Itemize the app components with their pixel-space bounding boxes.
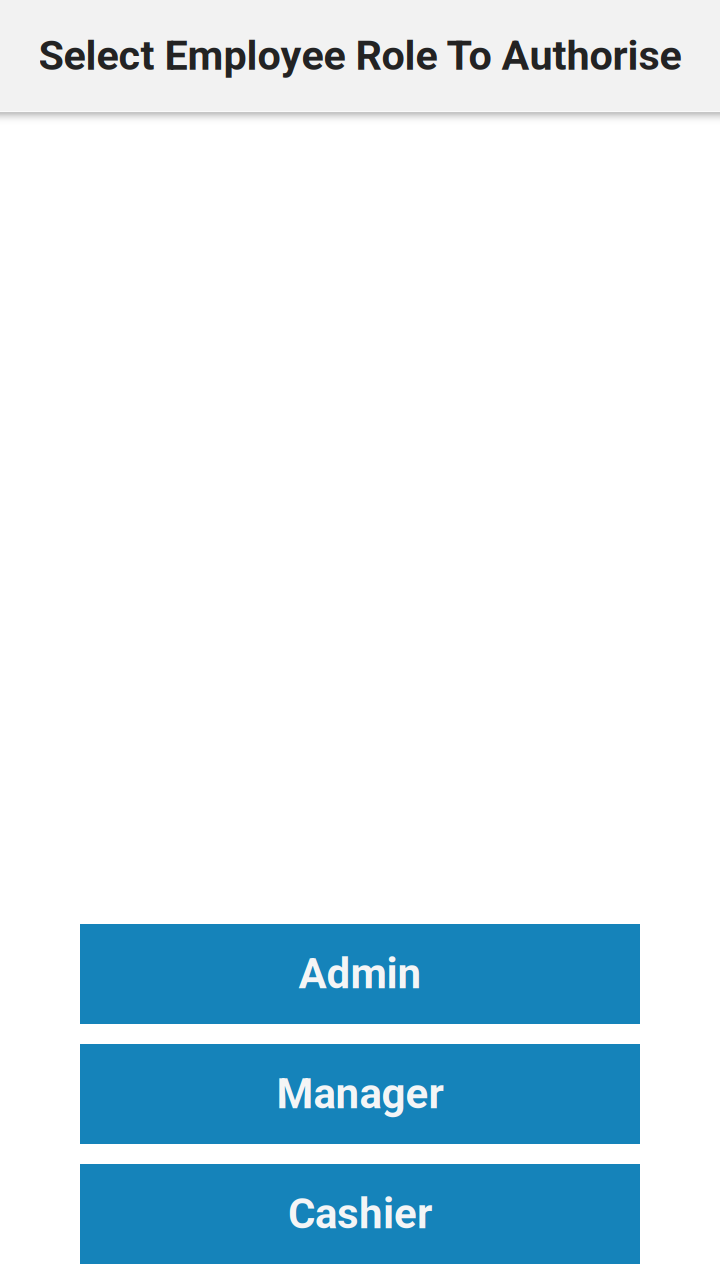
staticText: Select Employee Role To Authorise (38, 31, 681, 80)
staticText: Admin (298, 949, 421, 999)
button[interactable]: Admin (80, 924, 640, 1024)
button[interactable]: Cashier (80, 1164, 640, 1264)
button[interactable]: Manager (80, 1044, 640, 1144)
staticText: Cashier (288, 1189, 432, 1239)
staticText: Manager (276, 1069, 443, 1119)
